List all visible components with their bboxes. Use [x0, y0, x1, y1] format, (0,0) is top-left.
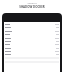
staticText: SHADOW DOCKER: [19, 5, 45, 9]
button[interactable]: [5, 37, 59, 40]
button[interactable]: [5, 43, 59, 46]
button[interactable]: [5, 30, 59, 33]
button[interactable]: [5, 33, 59, 36]
button[interactable]: [5, 23, 59, 26]
button[interactable]: [5, 50, 59, 53]
button[interactable]: [5, 53, 59, 56]
button[interactable]: [5, 47, 59, 50]
button[interactable]: [5, 40, 59, 43]
button[interactable]: [5, 26, 59, 29]
staticText: Support: [27, 1, 37, 4]
